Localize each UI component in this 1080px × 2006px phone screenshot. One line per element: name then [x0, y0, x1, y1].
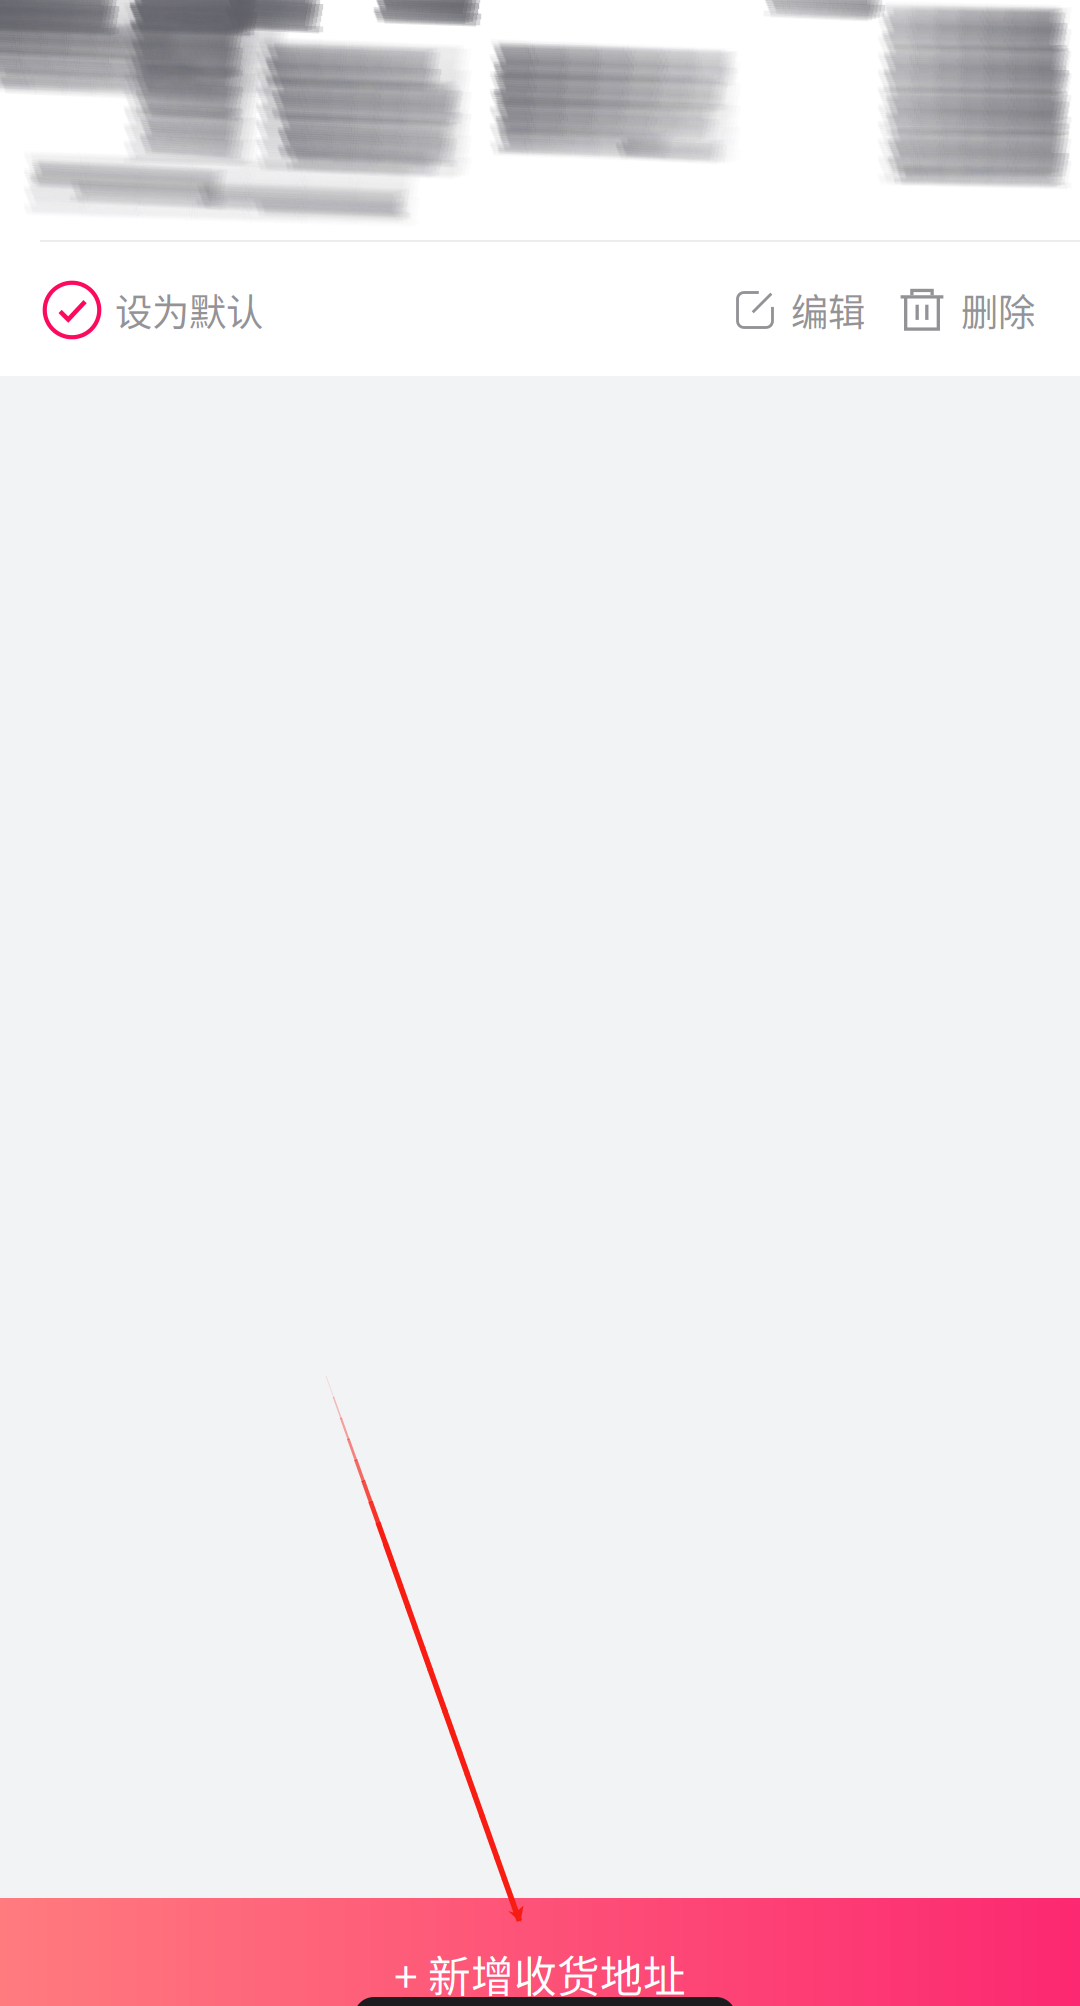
- staticText: 编辑: [791, 283, 865, 337]
- button[interactable]: 编辑: [726, 256, 875, 364]
- staticText: 删除: [961, 283, 1035, 337]
- button[interactable]: 设为默认: [0, 256, 283, 364]
- staticText: 设为默认: [115, 283, 263, 337]
- button[interactable]: + 新增收货地址: [0, 1898, 1080, 2006]
- button[interactable]: 收货地址: [0, 0, 1080, 240]
- staticText: + 新增收货地址: [394, 1943, 686, 2005]
- button[interactable]: 删除: [889, 256, 1080, 364]
